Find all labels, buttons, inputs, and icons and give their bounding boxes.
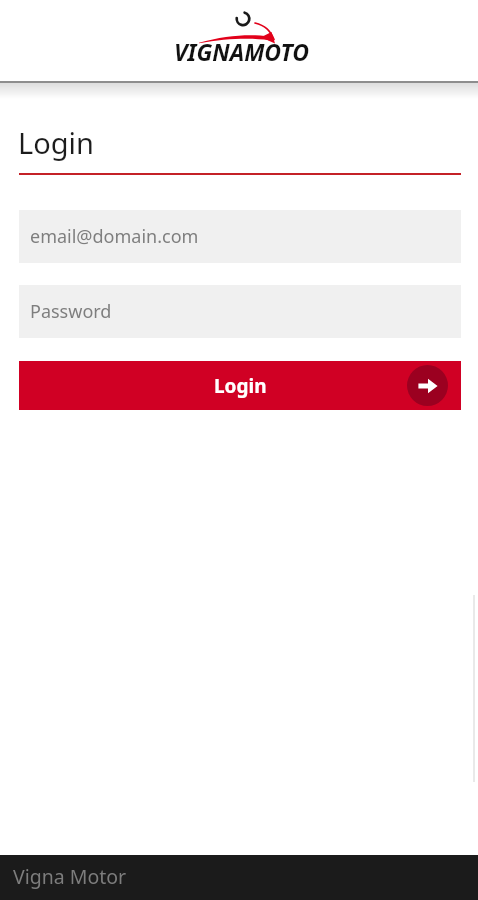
staticText: Vigna Motor [13, 863, 127, 890]
button[interactable]: email@domain.com [19, 210, 461, 263]
other: Login [418, 376, 438, 396]
staticText: Password [30, 299, 112, 324]
staticText: email@domain.com [30, 224, 199, 249]
button[interactable]: Password [19, 285, 461, 338]
staticText: VIGNAMOTO [174, 36, 310, 67]
staticText: Login [214, 373, 267, 399]
staticText: Login [18, 123, 94, 162]
button[interactable]: Login [19, 361, 461, 410]
button[interactable]: Vignamoto home [167, 5, 317, 67]
